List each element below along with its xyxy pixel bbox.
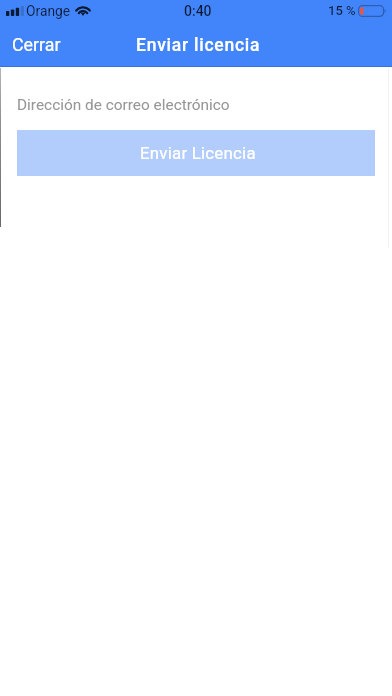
button[interactable]: Cerrar xyxy=(0,25,75,62)
staticText: Dirección de correo electrónico xyxy=(17,96,230,114)
staticText: Cerrar xyxy=(12,34,61,55)
staticText: Orange xyxy=(26,3,71,19)
button[interactable]: Enviar Licencia xyxy=(17,130,375,176)
other: Battery 15 percent xyxy=(358,5,386,17)
staticText: Enviar Licencia xyxy=(140,143,256,163)
other: Cellular signal xyxy=(6,6,24,16)
staticText: 0:40 xyxy=(184,3,212,19)
staticText: 15 % xyxy=(328,3,356,18)
other: Wi-Fi xyxy=(76,5,90,16)
staticText: Enviar licencia xyxy=(136,35,261,56)
